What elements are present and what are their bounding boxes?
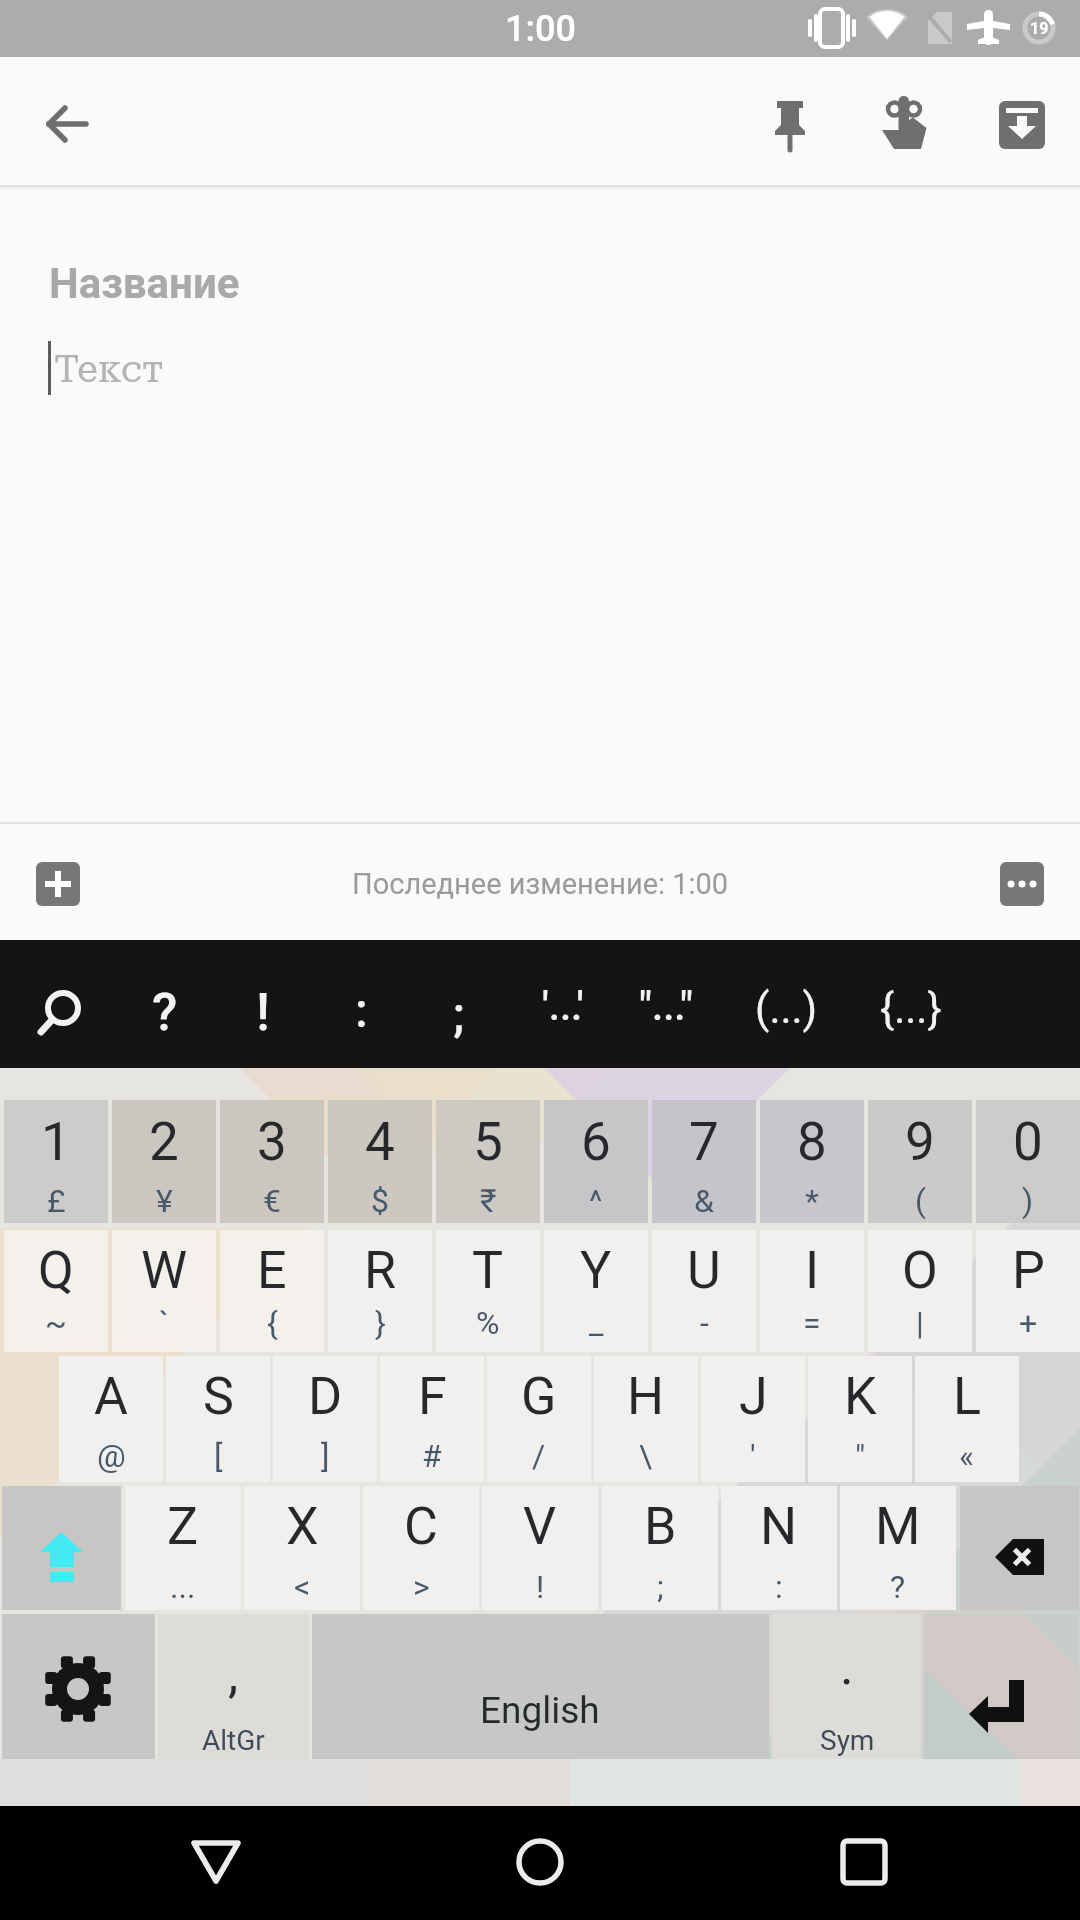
staticText: 3	[257, 1111, 287, 1173]
button[interactable]	[760, 94, 820, 154]
button[interactable]	[59, 1356, 163, 1482]
button[interactable]	[840, 1486, 956, 1610]
button[interactable]: Текст	[54, 339, 1031, 399]
button[interactable]	[544, 1230, 648, 1352]
button[interactable]	[31, 88, 103, 160]
button[interactable]	[868, 1230, 972, 1352]
button[interactable]	[976, 1230, 1080, 1352]
button[interactable]	[4, 1230, 108, 1352]
staticText: E	[257, 1240, 287, 1301]
staticText: 7	[689, 1111, 719, 1173]
button[interactable]	[960, 1486, 1079, 1610]
button[interactable]	[772, 1614, 921, 1759]
button[interactable]	[436, 1100, 540, 1223]
button[interactable]	[602, 1486, 718, 1610]
staticText: ₹	[480, 1182, 497, 1220]
staticText: €	[263, 1182, 281, 1220]
button[interactable]	[217, 944, 309, 1064]
button[interactable]	[166, 1356, 270, 1482]
staticText: `	[159, 1304, 169, 1342]
staticText: *	[805, 1182, 819, 1220]
button[interactable]	[760, 1230, 864, 1352]
staticText: {	[267, 1304, 278, 1342]
staticText: =	[803, 1304, 821, 1342]
button[interactable]	[875, 90, 935, 158]
staticText: /	[532, 1437, 546, 1475]
staticText: '	[750, 1437, 756, 1475]
staticText: W	[141, 1240, 188, 1301]
button[interactable]	[865, 944, 957, 1064]
button[interactable]	[315, 944, 407, 1064]
button[interactable]	[1000, 862, 1044, 906]
button[interactable]	[720, 1806, 1080, 1920]
button[interactable]	[760, 1100, 864, 1223]
button[interactable]	[244, 1486, 360, 1610]
button[interactable]	[36, 862, 80, 906]
button[interactable]	[2, 1486, 121, 1610]
button[interactable]	[220, 1230, 324, 1352]
button[interactable]	[413, 944, 505, 1064]
staticText: (...)	[755, 984, 818, 1033]
button[interactable]	[4, 1100, 108, 1223]
button[interactable]	[158, 1614, 309, 1759]
button[interactable]	[924, 1614, 1079, 1759]
button[interactable]	[312, 1614, 769, 1759]
staticText: H	[627, 1366, 665, 1427]
staticText: )	[1022, 1182, 1034, 1220]
button[interactable]	[544, 1100, 648, 1223]
button[interactable]	[868, 1100, 972, 1223]
staticText: (	[915, 1182, 926, 1220]
button[interactable]	[721, 1486, 837, 1610]
button[interactable]	[380, 1356, 484, 1482]
button[interactable]	[17, 944, 109, 1064]
button[interactable]	[112, 1100, 216, 1223]
button[interactable]	[701, 1356, 805, 1482]
staticText: !	[536, 1568, 545, 1606]
button[interactable]	[594, 1356, 698, 1482]
button[interactable]	[360, 1806, 720, 1920]
staticText: 6	[581, 1111, 611, 1173]
staticText: S	[203, 1366, 234, 1427]
button[interactable]	[328, 1100, 432, 1223]
button[interactable]	[220, 1100, 324, 1223]
staticText: V	[523, 1496, 557, 1557]
staticText: _	[589, 1304, 604, 1342]
staticText: Y	[580, 1240, 612, 1301]
button[interactable]	[652, 1100, 756, 1223]
staticText: K	[844, 1366, 877, 1427]
button[interactable]	[436, 1230, 540, 1352]
staticText: M	[875, 1496, 921, 1557]
staticText: :	[775, 1568, 783, 1606]
staticText: AltGr	[202, 1724, 265, 1757]
button[interactable]	[517, 944, 609, 1064]
staticText: #	[422, 1437, 442, 1475]
button[interactable]	[0, 1806, 360, 1920]
staticText: 9	[905, 1111, 935, 1173]
staticText: ?	[152, 982, 178, 1043]
staticText: \	[639, 1437, 653, 1475]
button[interactable]	[2, 1614, 155, 1759]
button[interactable]	[363, 1486, 479, 1610]
staticText: -	[700, 1304, 709, 1342]
staticText: 19	[1030, 19, 1049, 38]
button[interactable]	[273, 1356, 377, 1482]
button[interactable]	[119, 944, 211, 1064]
staticText: $	[371, 1182, 389, 1220]
button[interactable]	[652, 1230, 756, 1352]
button[interactable]	[808, 1356, 912, 1482]
button[interactable]	[620, 944, 712, 1064]
staticText: R	[364, 1240, 397, 1301]
button[interactable]	[482, 1486, 598, 1610]
button[interactable]: Название	[49, 253, 1031, 313]
button[interactable]	[992, 94, 1052, 154]
staticText: ^	[589, 1182, 603, 1220]
staticText: %	[476, 1304, 500, 1342]
button[interactable]	[740, 944, 832, 1064]
button[interactable]	[915, 1356, 1019, 1482]
button[interactable]	[976, 1100, 1080, 1223]
button[interactable]	[125, 1486, 241, 1610]
button[interactable]	[487, 1356, 591, 1482]
button[interactable]	[328, 1230, 432, 1352]
staticText: Текст	[54, 347, 164, 391]
button[interactable]	[112, 1230, 216, 1352]
